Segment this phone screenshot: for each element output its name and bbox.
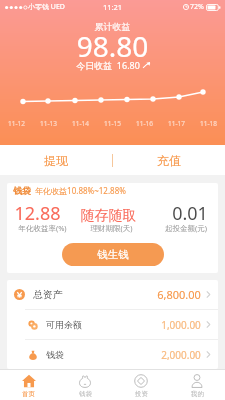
staticText: 11-14 <box>72 119 89 128</box>
staticText: 起投金额(元) <box>154 223 218 233</box>
staticText: 充值 <box>157 153 181 168</box>
staticText: 可用余额 <box>46 319 82 330</box>
staticText: 理财期限(天) <box>78 223 145 233</box>
button[interactable]: 我的 <box>169 370 225 400</box>
staticText: 2,000.00 <box>161 348 201 362</box>
staticText: 小零钱 UED <box>28 2 65 12</box>
staticText: 11-16 <box>136 119 153 128</box>
staticText: 我的 <box>191 390 204 398</box>
button[interactable]: 钱袋 <box>57 370 113 400</box>
staticText: 0.01 <box>158 201 218 226</box>
button[interactable]: 充值 <box>113 145 225 175</box>
staticText: 72% <box>190 2 204 12</box>
staticText: 投资 <box>135 390 148 398</box>
staticText: 累计收益 <box>0 21 225 32</box>
staticText: 11:21 <box>0 2 225 12</box>
staticText: 11-13 <box>40 119 57 128</box>
staticText: 总资产 <box>33 288 63 301</box>
staticText: 年化收益率(%) <box>7 223 78 233</box>
staticText: 11-18 <box>200 119 217 128</box>
staticText: 随存随取 <box>75 207 142 225</box>
button[interactable]: 钱袋 <box>7 340 218 369</box>
staticText: 6,800.00 <box>157 287 201 302</box>
staticText: 钱生钱 <box>97 248 129 261</box>
staticText: 12.88 <box>7 201 73 226</box>
button[interactable]: 钱袋 <box>7 183 218 273</box>
staticText: 钱袋 <box>13 185 31 196</box>
staticText: 11-17 <box>168 119 185 128</box>
staticText: 11-12 <box>8 119 25 128</box>
staticText: 1,000.00 <box>161 318 201 332</box>
staticText: 首页 <box>22 390 35 398</box>
button[interactable]: 钱生钱 <box>62 243 164 266</box>
button[interactable]: 提现 <box>0 145 112 175</box>
staticText: 钱袋 <box>46 349 64 360</box>
button[interactable]: 投资 <box>113 370 169 400</box>
staticText: 98.80 <box>0 27 225 65</box>
staticText: 11-15 <box>104 119 121 128</box>
button[interactable]: 总资产 <box>7 280 218 309</box>
button[interactable]: 首页 <box>0 370 57 400</box>
button[interactable]: 可用余额 <box>7 310 218 339</box>
staticText: 年化收益10.88%~12.88% <box>35 185 126 196</box>
staticText: 今日收益 16.80 <box>76 59 140 71</box>
staticText: 钱袋 <box>79 390 92 398</box>
staticText: 提现 <box>44 153 68 168</box>
